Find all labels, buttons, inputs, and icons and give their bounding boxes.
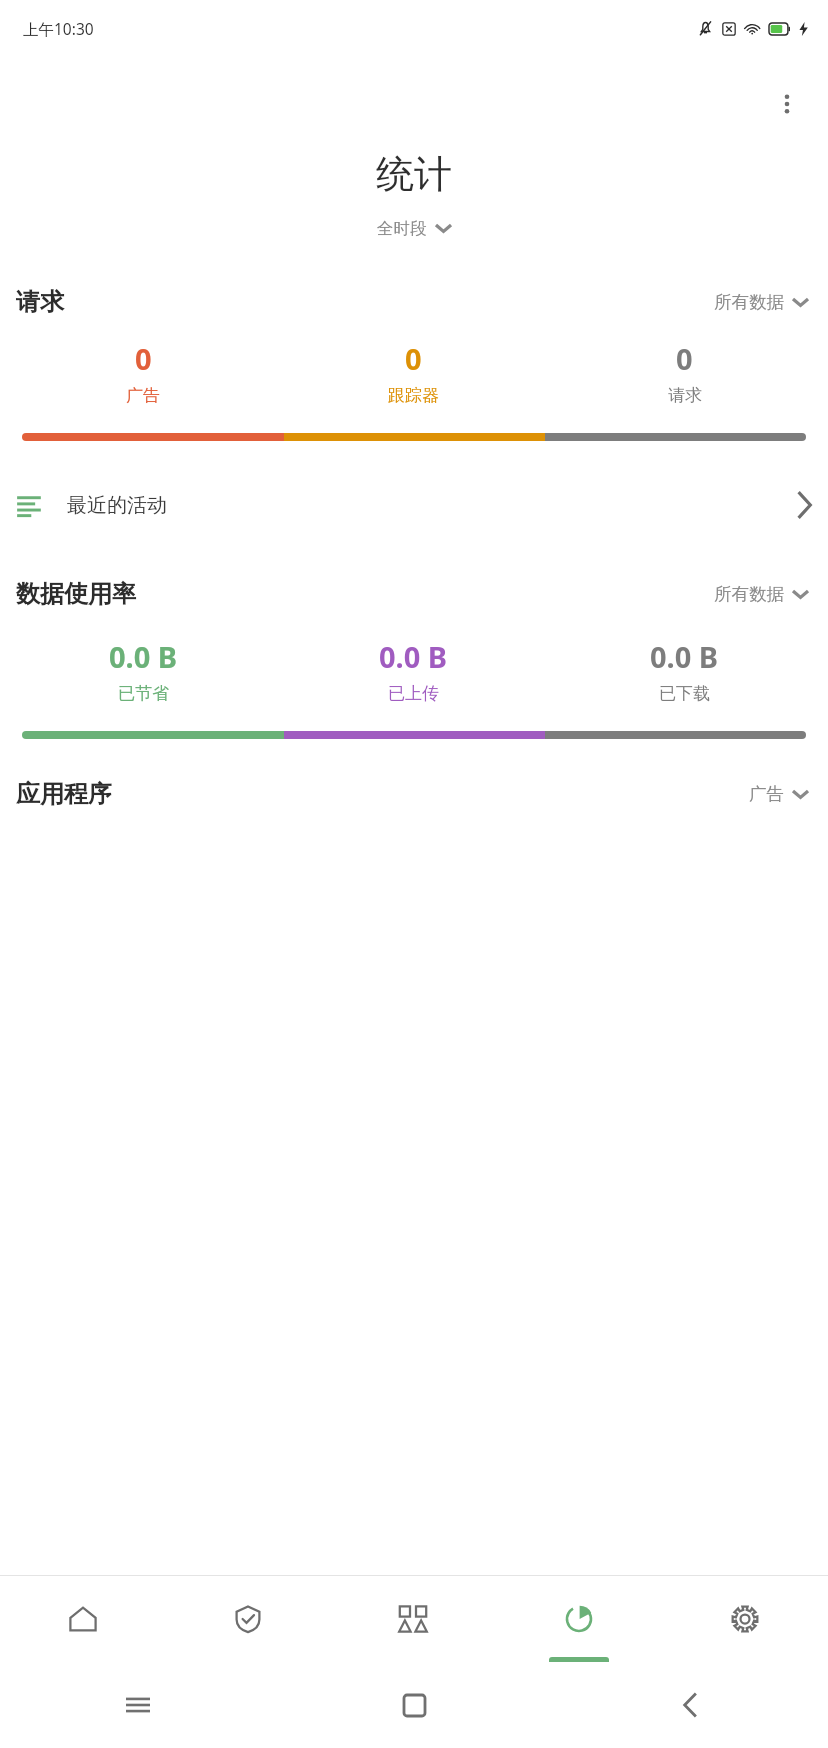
button[interactable]: 0.0 B <box>549 633 820 708</box>
staticText: 应用程序 <box>16 779 112 809</box>
button[interactable]: More options <box>763 80 811 128</box>
staticText: 已下载 <box>659 683 710 704</box>
staticText: 数据使用率 <box>16 579 136 609</box>
staticText: 统计 <box>0 150 828 198</box>
staticText: 广告 <box>126 385 160 406</box>
staticText: 0.0 B <box>379 637 448 676</box>
staticText: 所有数据 <box>714 291 784 313</box>
button[interactable]: 全时段 <box>367 214 461 243</box>
staticText: 所有数据 <box>714 583 784 605</box>
button[interactable]: 0 <box>8 335 278 410</box>
button[interactable]: Back <box>666 1681 714 1729</box>
button[interactable]: 0.0 B <box>8 633 278 708</box>
staticText: 最近的活动 <box>67 493 167 518</box>
staticText: 已节省 <box>118 683 169 704</box>
staticText: 0 <box>405 339 422 378</box>
button[interactable]: 所有数据 <box>706 285 816 319</box>
button[interactable]: 0 <box>549 335 820 410</box>
staticText: 已上传 <box>388 683 439 704</box>
button[interactable]: Statistics <box>496 1576 662 1662</box>
button[interactable]: 0 <box>278 335 549 410</box>
button[interactable]: 广告 <box>741 777 816 811</box>
button[interactable]: Home <box>390 1681 438 1729</box>
button[interactable]: Protection <box>165 1576 330 1662</box>
staticText: 请求 <box>16 287 64 317</box>
button[interactable]: 所有数据 <box>706 577 816 611</box>
button[interactable]: Settings <box>662 1576 828 1662</box>
staticText: 请求 <box>668 385 702 406</box>
staticText: 0.0 B <box>109 637 178 676</box>
staticText: 全时段 <box>377 218 427 239</box>
button[interactable]: 最近的活动 <box>0 477 828 533</box>
staticText: 上午10:30 <box>23 18 94 39</box>
button[interactable]: Recents <box>114 1681 162 1729</box>
staticText: 0 <box>135 339 152 378</box>
staticText: 0 <box>676 339 693 378</box>
button[interactable]: 0.0 B <box>278 633 549 708</box>
staticText: 0.0 B <box>650 637 719 676</box>
staticText: 跟踪器 <box>388 385 439 406</box>
button[interactable]: Home <box>0 1576 165 1662</box>
button[interactable]: Apps <box>330 1576 496 1662</box>
staticText: 广告 <box>749 783 784 805</box>
